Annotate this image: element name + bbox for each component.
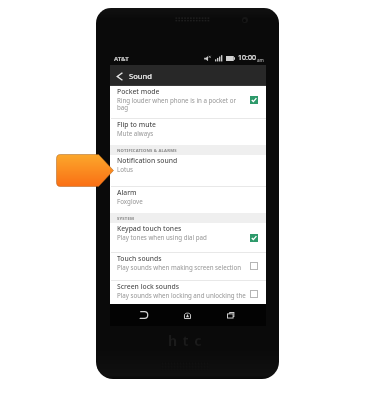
staticText: Flip to mute bbox=[117, 120, 156, 129]
button[interactable]: Pocket mode bbox=[110, 86, 266, 118]
staticText: Sound bbox=[129, 71, 152, 81]
button[interactable]: Back bbox=[110, 65, 266, 86]
staticText: 10:00 bbox=[238, 53, 256, 63]
staticText: Play tones when using dial pad bbox=[117, 233, 207, 241]
staticText: NOTIFICATIONS & ALARMS bbox=[117, 148, 177, 154]
staticText: Play sounds when making screen selection bbox=[117, 263, 241, 271]
staticText: Ring louder when phone is in a pocket or… bbox=[117, 96, 243, 112]
other: Back bbox=[116, 72, 123, 81]
staticText: Alarm bbox=[117, 188, 137, 197]
button[interactable]: Home bbox=[175, 307, 200, 323]
button[interactable]: Touch sounds bbox=[250, 262, 258, 270]
staticText: htc bbox=[168, 331, 207, 350]
button[interactable]: Recent apps bbox=[218, 307, 243, 323]
button[interactable]: Pointer highlighting Notification sound bbox=[56, 154, 114, 187]
button[interactable]: Screen lock sounds bbox=[250, 290, 258, 298]
staticText: Play sounds when locking and unlocking t… bbox=[117, 291, 246, 299]
button[interactable]: Touch sounds bbox=[110, 253, 266, 280]
staticText: SYSTEM bbox=[117, 216, 135, 222]
staticText: Foxglove bbox=[117, 197, 143, 205]
button[interactable]: Keypad touch tones bbox=[250, 234, 258, 242]
staticText: Lotus bbox=[117, 165, 134, 173]
staticText: am bbox=[257, 57, 264, 63]
button[interactable]: Back bbox=[132, 307, 157, 323]
button[interactable]: Notification sound bbox=[110, 155, 266, 186]
button[interactable]: Screen lock sounds bbox=[110, 281, 266, 304]
staticText: Screen lock sounds bbox=[117, 282, 180, 291]
button[interactable]: Flip to mute bbox=[110, 119, 266, 145]
staticText: Touch sounds bbox=[117, 254, 162, 263]
staticText: AT&T bbox=[114, 55, 129, 63]
button[interactable]: Alarm bbox=[110, 187, 266, 213]
staticText: Notification sound bbox=[117, 156, 178, 165]
staticText: Mute always bbox=[117, 129, 154, 137]
button[interactable]: Pocket mode bbox=[250, 96, 258, 104]
staticText: Keypad touch tones bbox=[117, 224, 182, 233]
button[interactable]: Keypad touch tones bbox=[110, 223, 266, 252]
staticText: Pocket mode bbox=[117, 87, 160, 96]
